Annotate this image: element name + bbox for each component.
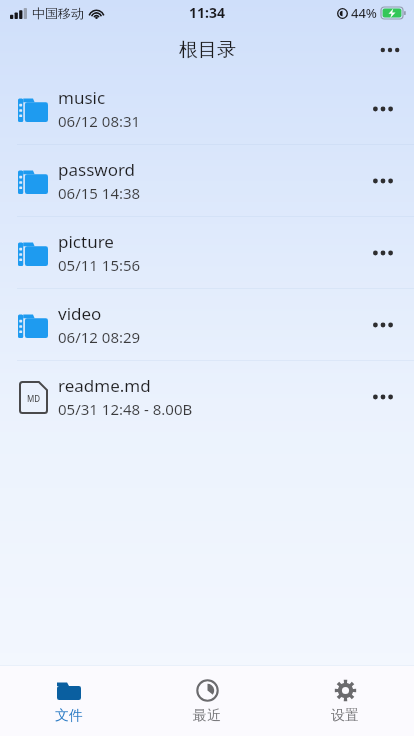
button[interactable]: More options [366,26,414,73]
button[interactable]: MD [0,361,414,432]
button[interactable]: password [0,145,414,216]
button[interactable]: More options for password [356,153,410,209]
button[interactable]: More options for picture [356,225,410,281]
staticText: 最近 [193,707,221,725]
staticText: 44% [351,4,377,22]
staticText: 05/31 12:48 - 8.00B [58,399,193,419]
button[interactable]: More options for video [356,297,410,353]
button[interactable]: picture [0,217,414,288]
staticText: 06/15 14:38 [58,183,141,203]
button[interactable]: More options for readme.md [356,369,410,425]
staticText: 05/11 15:56 [58,255,141,275]
button[interactable]: music [0,73,414,144]
button[interactable]: 设置 [276,666,414,736]
staticText: readme.md [58,374,151,397]
staticText: 11:34 [189,3,225,22]
staticText: 根目录 [179,38,236,62]
staticText: 06/12 08:29 [58,327,141,347]
staticText: password [58,158,136,181]
staticText: 文件 [55,707,83,725]
staticText: 中国移动 [32,5,84,21]
button[interactable]: video [0,289,414,360]
button[interactable]: 最近 [138,666,276,736]
staticText: video [58,302,102,325]
button[interactable]: 文件 [0,666,138,736]
staticText: MD [27,393,41,404]
staticText: music [58,86,106,109]
staticText: 06/12 08:31 [58,111,141,131]
button[interactable]: More options for music [356,81,410,137]
staticText: 设置 [331,707,359,725]
staticText: picture [58,230,114,253]
